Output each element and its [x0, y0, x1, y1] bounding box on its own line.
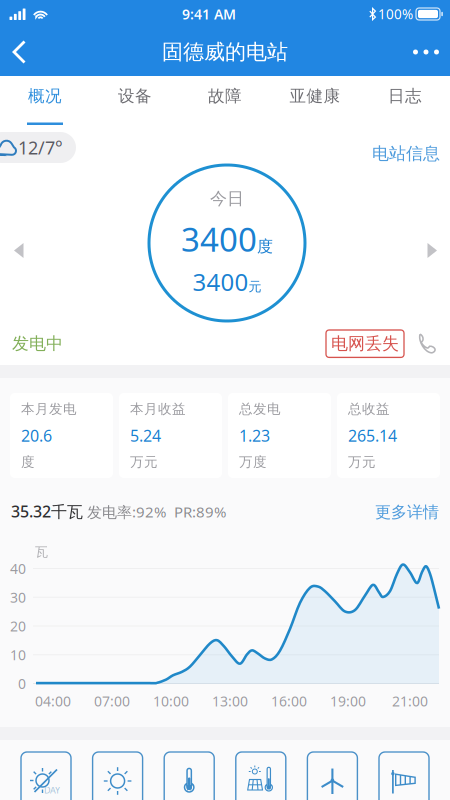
button[interactable]: 本月发电	[10, 393, 113, 478]
staticText: 万元	[348, 453, 376, 470]
button[interactable]: Irradiance	[93, 752, 143, 800]
staticText: 265.14	[348, 425, 397, 446]
button[interactable]: 亚健康	[270, 76, 360, 125]
button[interactable]: Next day	[411, 227, 450, 274]
staticText: 发电率:92% PR:89%	[83, 502, 226, 522]
staticText: 0	[18, 674, 26, 693]
staticText: 亚健康	[289, 86, 340, 106]
staticText: 9:41 AM	[182, 4, 236, 24]
button[interactable]: 故障	[180, 76, 270, 125]
staticText: DAY	[44, 784, 60, 796]
button[interactable]: More options	[394, 28, 450, 76]
staticText: 35.32千瓦	[11, 500, 83, 522]
staticText: 10	[10, 645, 26, 664]
staticText: 20	[10, 616, 26, 636]
staticText: 今日	[210, 188, 244, 209]
button[interactable]: Daily irradiance	[21, 752, 71, 800]
button[interactable]: 日志	[360, 76, 450, 125]
staticText: 10:00	[153, 691, 189, 711]
button[interactable]: Wind direction	[379, 752, 429, 800]
staticText: 设备	[118, 86, 152, 106]
staticText: 固德威的电站	[162, 39, 288, 65]
staticText: 电站信息	[372, 143, 440, 164]
staticText: 日志	[388, 86, 422, 106]
staticText: 瓦	[35, 544, 48, 560]
staticText: 04:00	[35, 691, 71, 711]
staticText: 故障	[208, 86, 242, 106]
button[interactable]: 总发电	[228, 393, 331, 478]
staticText: 16:00	[271, 691, 307, 711]
staticText: 万元	[130, 453, 158, 470]
staticText: 发电中	[12, 333, 63, 354]
button[interactable]: Call station	[404, 332, 450, 355]
staticText: 度	[21, 453, 35, 470]
staticText: 40	[10, 559, 26, 578]
button[interactable]: 电站信息	[372, 137, 450, 170]
staticText: 30	[10, 588, 26, 607]
button[interactable]: Module temperature	[236, 752, 286, 800]
button[interactable]: 更多详情	[375, 499, 439, 525]
staticText: 100%	[378, 5, 413, 23]
button[interactable]: 概况	[0, 76, 90, 125]
button[interactable]: Ambient temperature	[164, 752, 214, 800]
staticText: 5.24	[130, 425, 161, 446]
button[interactable]: Wind speed	[307, 752, 357, 800]
staticText: 总发电	[239, 401, 281, 418]
staticText: 07:00	[94, 691, 130, 711]
staticText: 19:00	[330, 691, 366, 711]
staticText: 3400	[192, 265, 248, 298]
staticText: 13:00	[212, 691, 248, 711]
staticText: 1.23	[239, 425, 270, 446]
staticText: 21:00	[392, 691, 428, 711]
staticText: 20.6	[21, 425, 52, 446]
button[interactable]: 总收益	[337, 393, 440, 478]
staticText: 概况	[28, 86, 62, 106]
staticText: 万度	[239, 453, 267, 470]
button[interactable]: Previous day	[0, 227, 39, 274]
button[interactable]: Back	[0, 28, 45, 76]
button[interactable]: 设备	[90, 76, 180, 125]
button[interactable]: 本月收益	[119, 393, 222, 478]
staticText: 本月发电	[21, 401, 77, 418]
staticText: 本月收益	[130, 401, 186, 418]
staticText: 电网丢失	[331, 333, 399, 354]
staticText: 度	[257, 236, 273, 256]
staticText: 3400	[181, 216, 257, 261]
staticText: 总收益	[348, 401, 390, 418]
staticText: 12/7°	[18, 135, 63, 160]
staticText: 更多详情	[375, 502, 439, 522]
staticText: 元	[248, 278, 261, 295]
